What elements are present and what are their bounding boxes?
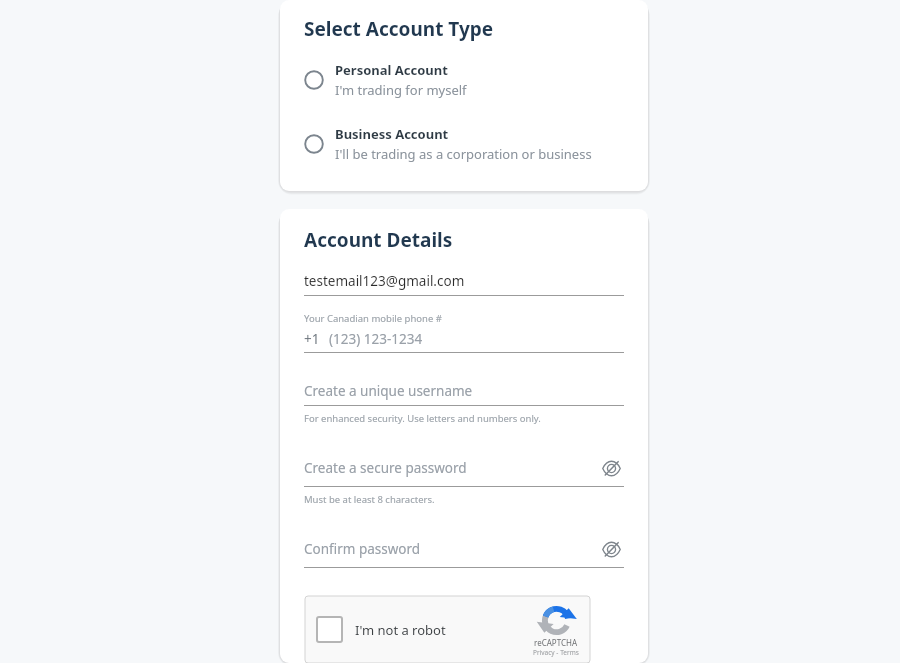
button[interactable]: Confirm password	[304, 536, 624, 562]
staticText: I'll be trading as a corporation or busi…	[335, 145, 592, 163]
staticText: I'm not a robot	[355, 621, 446, 639]
button[interactable]: Show password	[598, 455, 624, 481]
staticText: I'm trading for myself	[335, 81, 467, 99]
staticText: reCAPTCHA	[534, 637, 578, 648]
button[interactable]: Create a unique username	[304, 382, 624, 400]
button[interactable]: Personal Account	[280, 59, 648, 101]
staticText: Privacy - Terms	[533, 648, 579, 657]
staticText: Personal Account	[335, 61, 448, 79]
staticText: testemail123@gmail.com	[304, 272, 465, 290]
button[interactable]: Create a secure password	[304, 455, 624, 481]
staticText: Select Account Type	[304, 16, 494, 42]
staticText: +1	[304, 330, 320, 348]
staticText: Confirm password	[304, 540, 421, 558]
staticText: Account Details	[304, 227, 453, 253]
button[interactable]: testemail123@gmail.com	[304, 272, 624, 290]
staticText: Business Account	[335, 125, 449, 143]
staticText: For enhanced security. Use letters and n…	[304, 412, 541, 425]
staticText: Your Canadian mobile phone #	[304, 312, 442, 325]
button[interactable]: +1	[304, 330, 624, 348]
staticText: (123) 123-1234	[329, 330, 423, 348]
button[interactable]: Show confirm password	[598, 536, 624, 562]
staticText: Create a secure password	[304, 459, 467, 477]
button[interactable]: Business Account	[280, 123, 648, 165]
button[interactable]: I'm not a robot checkbox	[317, 617, 342, 642]
staticText: Create a unique username	[304, 382, 473, 400]
staticText: Must be at least 8 characters.	[304, 493, 435, 506]
